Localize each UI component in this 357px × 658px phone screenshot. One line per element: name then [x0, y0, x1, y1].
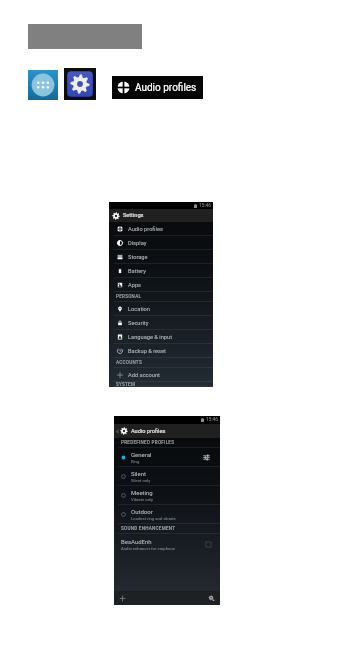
- staticText: Audio profiles: [128, 226, 163, 233]
- staticText: Battery: [128, 268, 147, 275]
- staticText: Audio profiles: [135, 82, 197, 94]
- staticText: Meeting: [131, 489, 153, 496]
- staticText: SOUND ENHANCEMENT: [121, 526, 176, 531]
- staticText: General: [131, 451, 152, 458]
- staticText: PERSONAL: [116, 294, 142, 299]
- button[interactable]: Security: [109, 316, 213, 330]
- button[interactable]: Apps: [109, 278, 213, 292]
- staticText: Security: [128, 320, 149, 327]
- staticText: SYSTEM: [116, 382, 136, 386]
- staticText: Silent: [131, 470, 146, 477]
- button[interactable]: Audio profiles: [109, 222, 213, 236]
- button[interactable]: General: [114, 448, 220, 467]
- button[interactable]: Add account: [109, 368, 213, 382]
- staticText: Storage: [128, 254, 148, 261]
- staticText: Ring: [131, 459, 140, 464]
- staticText: Outdoor: [131, 508, 153, 515]
- staticText: Vibrate only: [131, 497, 153, 502]
- button[interactable]: Settings app: [64, 68, 96, 100]
- staticText: Apps: [128, 282, 142, 289]
- button[interactable]: Outdoor: [114, 505, 220, 524]
- staticText: PREDEFINED PROFILES: [121, 440, 175, 445]
- button[interactable]: Silent: [114, 467, 220, 486]
- button[interactable]: Meeting: [114, 486, 220, 505]
- staticText: 15:46: [199, 203, 211, 209]
- button[interactable]: All apps: [28, 70, 58, 100]
- staticText: 15:46: [206, 417, 218, 423]
- button[interactable]: Battery: [109, 264, 213, 278]
- staticText: Add account: [128, 372, 160, 379]
- button[interactable]: More settings: [206, 593, 217, 604]
- button[interactable]: Settings: [112, 209, 213, 222]
- staticText: Loudest ring and vibrate: [131, 516, 176, 521]
- button[interactable]: Audio profiles: [117, 76, 197, 99]
- button[interactable]: Configure profile: [202, 453, 211, 462]
- button[interactable]: Display: [109, 236, 213, 250]
- staticText: Backup & reset: [128, 348, 166, 355]
- staticText: Display: [128, 240, 147, 247]
- button[interactable]: BesAudEnh: [121, 534, 211, 555]
- staticText: Silent only: [131, 478, 151, 483]
- staticText: BesAudEnh: [121, 538, 152, 545]
- staticText: Location: [128, 306, 151, 313]
- staticText: Settings: [123, 212, 144, 219]
- staticText: Audio enhancer for earphone: [121, 546, 175, 551]
- staticText: Audio profiles: [131, 428, 166, 435]
- button[interactable]: Audio profiles: [115, 424, 220, 438]
- button[interactable]: Backup & reset: [109, 344, 213, 358]
- staticText: Language & input: [128, 334, 173, 341]
- button[interactable]: Language & input: [109, 330, 213, 344]
- button[interactable]: Location: [109, 302, 213, 316]
- button[interactable]: Storage: [109, 250, 213, 264]
- staticText: ACCOUNTS: [116, 360, 142, 365]
- button[interactable]: Add profile: [117, 593, 128, 604]
